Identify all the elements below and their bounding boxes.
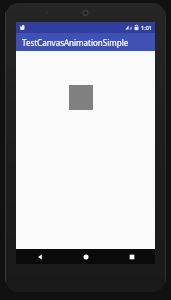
button[interactable]: Home — [63, 249, 109, 264]
staticText: 1:01 — [141, 24, 152, 31]
button[interactable]: Recent apps — [109, 249, 155, 264]
staticText: TestCanvasAnimationSimple — [22, 37, 129, 48]
button[interactable]: Back — [16, 249, 63, 264]
button[interactable]: TestCanvasAnimationSimple — [16, 33, 155, 51]
